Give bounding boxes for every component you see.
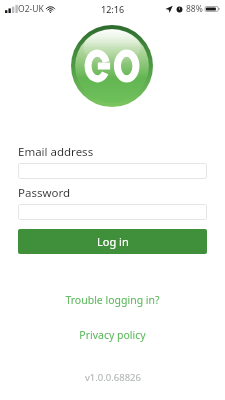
button[interactable]: Text input field (18, 204, 207, 220)
button[interactable]: Privacy policy (69, 325, 156, 345)
staticText: Log in (97, 234, 129, 249)
staticText: 88% (186, 3, 203, 15)
staticText: Email address (18, 144, 94, 160)
button[interactable]: Text input field (18, 163, 207, 179)
staticText: O2-UK (18, 3, 44, 15)
staticText: Privacy policy (79, 328, 146, 342)
staticText: v1.0.0.68826 (85, 371, 141, 384)
staticText: Password (18, 185, 71, 201)
staticText: Trouble logging in? (65, 293, 160, 307)
button[interactable]: Trouble logging in? (55, 290, 170, 310)
staticText: 12:16 (101, 3, 125, 15)
button[interactable]: Log in (18, 229, 207, 254)
